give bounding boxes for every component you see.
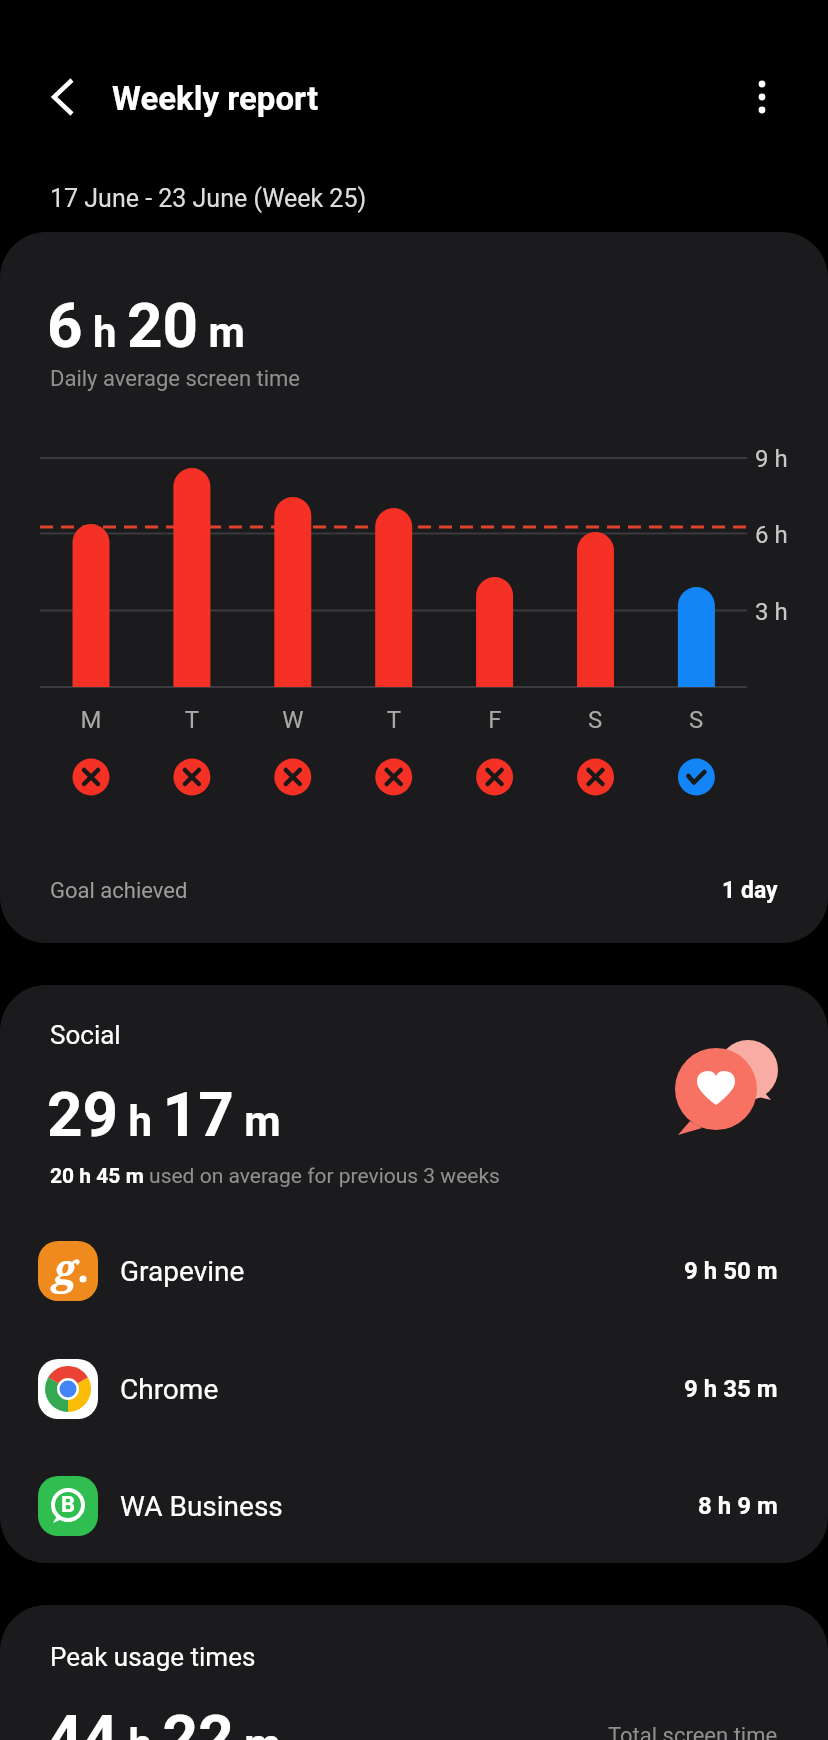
- button[interactable]: [734, 69, 790, 125]
- staticText: Total screen time: [608, 1723, 778, 1740]
- staticText: 8 h 9 m: [698, 1492, 778, 1520]
- staticText: T: [344, 706, 444, 734]
- staticText: 1 day: [722, 877, 778, 904]
- staticText: Chrome: [120, 1373, 219, 1406]
- button[interactable]: Peak usage times: [0, 1605, 828, 1740]
- staticText: 9 h 50 m: [684, 1257, 778, 1285]
- staticText: B: [61, 1492, 76, 1518]
- staticText: Weekly report: [112, 79, 319, 118]
- staticText: g: [53, 1241, 78, 1296]
- staticText: WA Business: [120, 1490, 283, 1523]
- button[interactable]: Social: [0, 985, 828, 1563]
- button[interactable]: B: [38, 1476, 778, 1536]
- staticText: 29 h 17 m: [47, 1078, 281, 1151]
- staticText: F: [445, 706, 545, 734]
- staticText: Peak usage times: [50, 1642, 256, 1672]
- button[interactable]: g: [38, 1241, 778, 1301]
- staticText: M: [41, 706, 141, 734]
- staticText: T: [142, 706, 242, 734]
- staticText: 20 h 45 m used on average for previous 3…: [50, 1164, 500, 1189]
- button[interactable]: [38, 69, 94, 125]
- button[interactable]: Chrome: [38, 1359, 778, 1419]
- staticText: Daily average screen time: [50, 366, 300, 392]
- staticText: S: [545, 706, 645, 734]
- staticText: 3 h: [755, 598, 788, 626]
- staticText: W: [243, 706, 343, 734]
- staticText: 6 h 20 m: [47, 289, 245, 362]
- staticText: S: [646, 706, 746, 734]
- staticText: 9 h: [755, 445, 788, 473]
- staticText: Grapevine: [120, 1255, 245, 1288]
- staticText: Social: [50, 1020, 121, 1050]
- staticText: 9 h 35 m: [684, 1375, 778, 1403]
- staticText: Goal achieved: [50, 878, 188, 904]
- button[interactable]: 6 h 20 m: [0, 232, 828, 943]
- staticText: 44 h 22 m: [47, 1701, 281, 1740]
- staticText: 17 June - 23 June (Week 25): [50, 184, 367, 213]
- staticText: 6 h: [755, 521, 788, 549]
